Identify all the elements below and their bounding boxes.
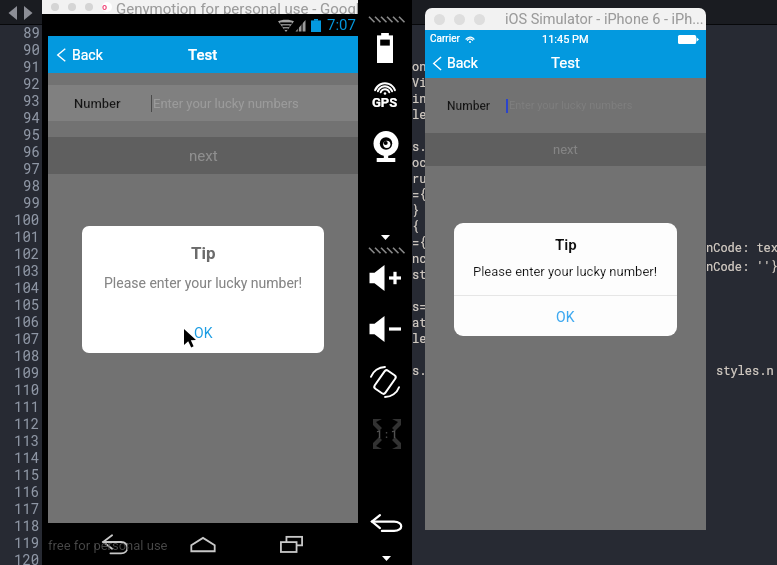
button[interactable]: Home xyxy=(183,527,223,561)
staticText: at xyxy=(412,314,427,330)
staticText: 101 xyxy=(14,227,40,244)
staticText: OK xyxy=(194,325,213,341)
staticText: 94 xyxy=(23,108,40,125)
button[interactable]: Volume down xyxy=(369,315,401,343)
staticText: Back xyxy=(447,55,478,71)
staticText: 92 xyxy=(23,74,40,91)
staticText: 119 xyxy=(14,533,40,550)
staticText: 111 xyxy=(14,397,40,414)
staticText: Please enter your lucky number! xyxy=(104,275,303,291)
staticText: Number xyxy=(447,99,491,113)
button[interactable]: OK xyxy=(454,297,677,336)
button[interactable]: Back xyxy=(96,527,136,561)
staticText: Enter your lucky numbers xyxy=(153,96,299,111)
staticText: 1 : 1 xyxy=(376,428,398,441)
staticText: 96 xyxy=(23,142,40,159)
staticText: OK xyxy=(556,309,575,325)
button[interactable]: OK xyxy=(177,322,229,344)
staticText: 93 xyxy=(23,91,40,108)
staticText: next xyxy=(553,142,578,157)
staticText: 95 xyxy=(23,125,40,142)
staticText: ={ xyxy=(412,234,427,250)
staticText: 120 xyxy=(14,550,40,565)
staticText: Genymotion for personal use - Google Gal… xyxy=(116,0,406,14)
staticText: Enter your lucky numbers xyxy=(509,99,633,112)
staticText: ={ xyxy=(412,186,427,202)
staticText: 104 xyxy=(14,278,40,295)
staticText: 98 xyxy=(23,176,40,193)
staticText: 117 xyxy=(14,499,40,516)
staticText: 107 xyxy=(14,329,40,346)
staticText: on xyxy=(412,58,427,74)
staticText: Vi xyxy=(412,74,427,90)
staticText: 91 xyxy=(23,57,40,74)
staticText: Tip xyxy=(555,236,577,254)
staticText: styles.n xyxy=(716,362,774,378)
staticText: 114 xyxy=(14,448,40,465)
staticText: 97 xyxy=(23,159,40,176)
staticText: 11:45 PM xyxy=(542,33,589,46)
staticText: 113 xyxy=(14,431,40,448)
staticText: s= xyxy=(412,298,427,314)
staticText: in xyxy=(412,90,427,106)
staticText: 99 xyxy=(23,193,40,210)
staticText: le xyxy=(412,330,427,346)
staticText: nCode: ''} xyxy=(706,258,777,274)
staticText: 115 xyxy=(14,465,40,482)
staticText: nc xyxy=(412,250,427,266)
button[interactable]: Camera xyxy=(371,131,401,169)
button[interactable]: Back xyxy=(57,47,103,63)
staticText: 112 xyxy=(14,414,40,431)
staticText: 103 xyxy=(14,261,40,278)
staticText: 100 xyxy=(14,210,40,227)
staticText: Carrier xyxy=(430,33,460,45)
staticText: Please enter your lucky number! xyxy=(473,264,658,279)
staticText: Number xyxy=(74,96,121,111)
button[interactable]: Battery xyxy=(372,28,398,68)
staticText: le xyxy=(412,106,427,122)
staticText: ru xyxy=(412,170,427,186)
staticText: next xyxy=(189,147,218,165)
staticText: iOS Simulator - iPhone 6 - iPh... xyxy=(505,11,704,28)
button[interactable]: Scale 1 to 1 xyxy=(371,417,403,451)
button[interactable]: Volume up xyxy=(369,264,401,292)
staticText: oc xyxy=(412,154,427,170)
staticText: 108 xyxy=(14,346,40,363)
staticText: } xyxy=(412,202,420,218)
button[interactable]: Recents xyxy=(271,527,311,561)
staticText: 106 xyxy=(14,312,40,329)
staticText: { xyxy=(412,218,427,234)
button[interactable]: GPS xyxy=(370,84,400,108)
staticText: s. xyxy=(412,362,427,378)
staticText: 90 xyxy=(23,40,40,57)
button[interactable]: Back xyxy=(370,512,404,534)
staticText: Back xyxy=(72,47,103,63)
button[interactable]: Rotate xyxy=(369,364,401,400)
button[interactable]: next xyxy=(48,137,358,174)
staticText: 110 xyxy=(14,380,40,397)
staticText: Tip xyxy=(191,243,216,263)
staticText: 116 xyxy=(14,482,40,499)
staticText: 118 xyxy=(14,516,40,533)
staticText: 102 xyxy=(14,244,40,261)
staticText: s. xyxy=(412,138,427,154)
staticText: Test xyxy=(188,46,218,64)
staticText: oo xyxy=(102,2,112,12)
staticText: GPS xyxy=(372,95,398,108)
staticText: 89 xyxy=(23,23,40,40)
button[interactable]: Back xyxy=(433,55,478,71)
staticText: Test xyxy=(551,54,580,72)
staticText: st xyxy=(412,266,427,282)
staticText: nCode: tex xyxy=(706,239,777,255)
staticText: 7:07 xyxy=(327,16,356,34)
staticText: 105 xyxy=(14,295,40,312)
staticText: free for personal use xyxy=(48,538,168,553)
staticText: 109 xyxy=(14,363,40,380)
